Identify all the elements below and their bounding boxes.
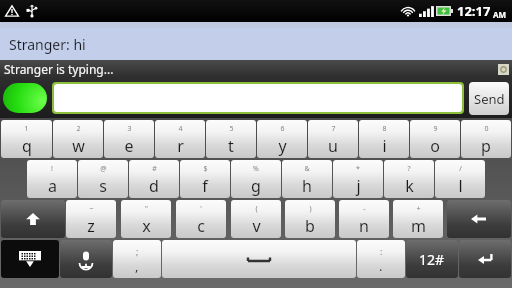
button[interactable] [54,84,462,112]
staticText: k [405,175,414,197]
staticText: ' [200,204,202,214]
staticText: + [416,204,421,214]
staticText: a [48,175,57,197]
staticText: e [124,135,134,157]
staticText: @ [100,164,107,174]
button[interactable]: h [282,160,332,198]
button[interactable]: y [257,120,307,158]
staticText: $ [203,164,208,174]
staticText: 1 [24,124,29,134]
staticText: * [356,164,360,174]
staticText: x [142,215,151,237]
button[interactable]: Voice input [60,240,112,278]
button[interactable]: Stranger: hi [0,28,512,60]
staticText: q [22,135,32,157]
button[interactable]: Backspace [447,200,511,238]
staticText: & [304,164,310,174]
staticText: , [135,257,139,273]
button[interactable]: w [53,120,103,158]
staticText: / [459,164,462,174]
button[interactable]: colon period [357,240,405,278]
staticText: p [481,135,491,157]
staticText: ? [407,164,411,174]
staticText: . [379,257,383,273]
button[interactable]: b [285,200,335,238]
button[interactable]: Scroll [498,64,509,75]
button[interactable]: a [27,160,77,198]
staticText: : [380,245,383,257]
button[interactable]: semicolon comma [113,240,161,278]
staticText: 6 [280,124,285,134]
staticText: 0 [484,124,489,134]
staticText: n [359,215,369,237]
button[interactable]: Space [162,240,356,278]
button[interactable]: u [308,120,358,158]
button[interactable]: i [359,120,409,158]
staticText: ) [309,204,312,214]
button[interactable]: Shift [1,200,65,238]
staticText: ; [136,245,139,257]
staticText: ( [255,204,258,214]
button[interactable]: k [384,160,434,198]
staticText: d [149,175,159,197]
staticText: Stranger is typing... [4,61,114,77]
button[interactable]: g [231,160,281,198]
staticText: i [382,135,387,157]
staticText: b [305,215,315,237]
button[interactable]: j [333,160,383,198]
button[interactable]: Send [469,82,509,115]
button[interactable]: f [180,160,230,198]
button[interactable]: l [435,160,485,198]
staticText: ~ [89,204,94,214]
staticText: u [328,135,338,157]
staticText: # [152,164,157,174]
staticText: m [411,215,426,237]
staticText: s [99,175,107,197]
staticText: " [145,204,148,214]
staticText: 3 [127,124,132,134]
button[interactable]: Hide keyboard [1,240,59,278]
button[interactable]: c [176,200,226,238]
staticText: f [202,175,208,197]
button[interactable]: x [121,200,171,238]
button[interactable]: z [66,200,116,238]
button[interactable]: Enter [459,240,511,278]
button[interactable]: s [78,160,128,198]
button[interactable]: q [1,120,52,158]
button[interactable]: m [393,200,443,238]
staticText: o [430,135,440,157]
staticText: j [356,175,361,197]
staticText: 7 [331,124,336,134]
button[interactable]: Symbols [406,240,458,278]
staticText: 12:17 [457,2,491,20]
button[interactable]: d [129,160,179,198]
staticText: % [253,164,259,174]
staticText: l [458,175,463,197]
staticText: 4 [178,124,183,134]
staticText: r [177,135,184,157]
button[interactable]: r [155,120,205,158]
button[interactable]: t [206,120,256,158]
staticText: 8 [382,124,387,134]
button[interactable]: Status [3,83,47,113]
staticText: 9 [433,124,438,134]
staticText: Stranger: hi [9,35,86,54]
staticText: t [228,135,234,157]
staticText: 2 [76,124,81,134]
staticText: g [251,175,261,197]
staticText: AM [491,9,507,20]
staticText: w [72,135,85,157]
staticText: z [87,215,95,237]
button[interactable]: p [461,120,511,158]
staticText: - [363,204,366,214]
staticText: v [252,215,261,237]
button[interactable]: o [410,120,460,158]
button[interactable]: v [231,200,281,238]
staticText: c [197,215,205,237]
staticText: y [278,135,287,157]
button[interactable]: n [339,200,389,238]
staticText: Send [474,90,505,108]
button[interactable]: e [104,120,154,158]
staticText: h [302,175,312,197]
staticText: ! [51,164,53,174]
